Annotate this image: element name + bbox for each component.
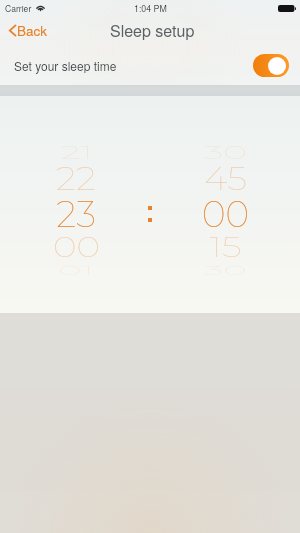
- staticText: Set your sleep time: [14, 57, 117, 74]
- staticText: 23: [56, 192, 96, 236]
- button[interactable]: Set your sleep time toggle: [253, 54, 289, 77]
- staticText: Back: [17, 21, 48, 40]
- staticText: Carrier: [5, 2, 32, 14]
- staticText: 30: [203, 262, 247, 278]
- staticText: 00: [53, 229, 100, 265]
- button[interactable]: Back: [0, 16, 58, 44]
- staticText: 1:04 PM: [134, 2, 167, 15]
- staticText: 21: [60, 140, 93, 164]
- staticText: 30: [203, 140, 247, 164]
- staticText: 45: [204, 160, 247, 198]
- staticText: 22: [56, 160, 96, 198]
- staticText: 01: [58, 262, 94, 278]
- staticText: Sleep setup: [110, 19, 195, 42]
- staticText: 00: [202, 192, 249, 236]
- staticText: 15: [209, 229, 242, 265]
